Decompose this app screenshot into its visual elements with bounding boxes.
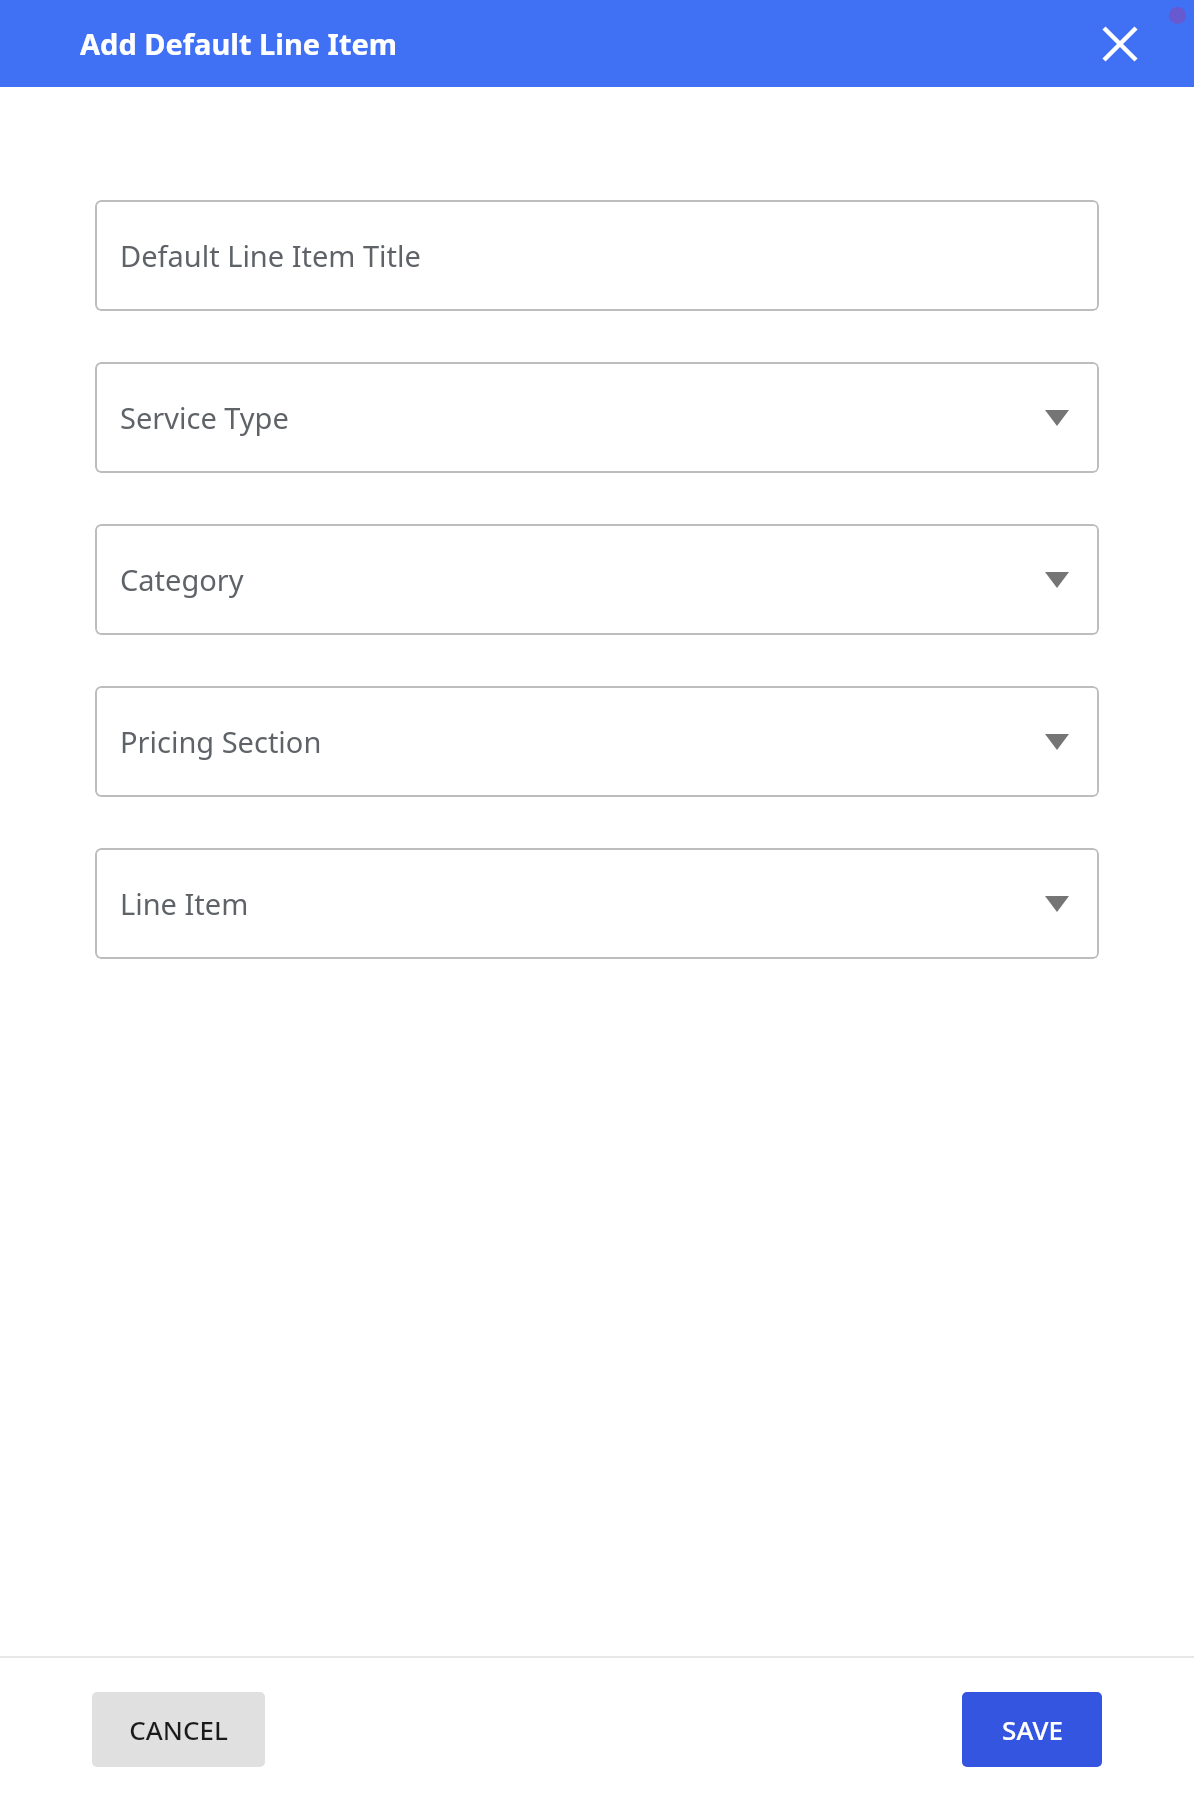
button[interactable]: Default Line Item Title [95,200,1099,311]
button[interactable]: SAVE [962,1692,1102,1767]
staticText: Default Line Item Title [120,236,421,275]
staticText: Category [120,560,244,599]
button[interactable]: Category [95,524,1099,635]
staticText: Line Item [120,884,249,923]
staticText: Pricing Section [120,722,322,761]
button[interactable]: Close [1090,14,1150,74]
button[interactable]: Service Type [95,362,1099,473]
button[interactable]: CANCEL [92,1692,265,1767]
staticText: Add Default Line Item [80,24,398,63]
staticText: Service Type [120,398,289,437]
button[interactable]: Pricing Section [95,686,1099,797]
staticText: CANCEL [129,1712,228,1747]
staticText: SAVE [1002,1712,1063,1747]
button[interactable]: Line Item [95,848,1099,959]
